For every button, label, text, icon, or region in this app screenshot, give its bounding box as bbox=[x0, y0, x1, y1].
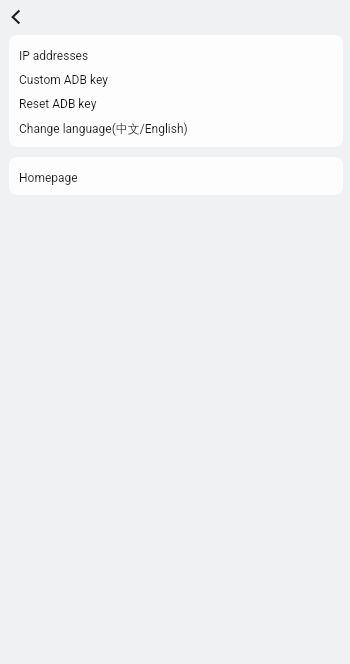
staticText: Change language(中文/English) bbox=[19, 121, 188, 136]
button[interactable]: Homepage bbox=[9, 166, 343, 190]
button[interactable]: Back bbox=[0, 0, 34, 34]
button[interactable]: IP addresses bbox=[9, 44, 343, 68]
button[interactable]: Change language(中文/English) bbox=[9, 116, 343, 141]
staticText: Reset ADB key bbox=[19, 97, 97, 111]
button[interactable]: Reset ADB key bbox=[9, 92, 343, 116]
button[interactable]: Custom ADB key bbox=[9, 68, 343, 92]
staticText: Custom ADB key bbox=[19, 73, 108, 87]
staticText: Homepage bbox=[19, 171, 78, 185]
staticText: IP addresses bbox=[19, 49, 89, 63]
